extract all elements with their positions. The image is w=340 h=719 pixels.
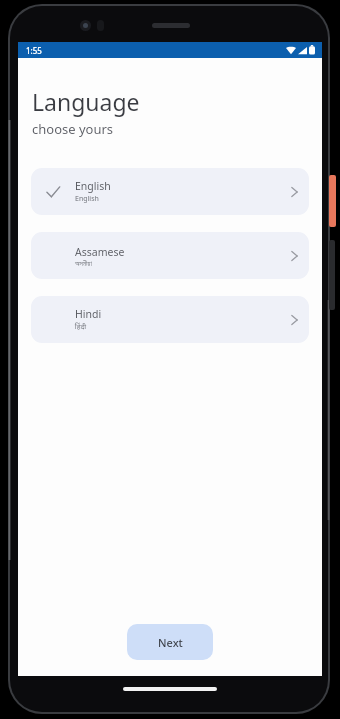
button[interactable]: Hindi (31, 296, 309, 343)
button[interactable]: Assamese (31, 232, 309, 279)
staticText: English (75, 179, 111, 193)
staticText: हिंदी (75, 322, 87, 332)
staticText: Hindi (75, 307, 102, 321)
staticText: Next (158, 635, 183, 650)
staticText: Assamese (75, 245, 125, 259)
staticText: choose yours (32, 120, 114, 138)
staticText: English (75, 194, 99, 204)
button[interactable]: Next (127, 624, 213, 660)
button[interactable]: English (31, 168, 309, 215)
staticText: অসমীয়া (75, 260, 92, 267)
staticText: Language (32, 86, 140, 117)
staticText: 1:55 (26, 45, 42, 56)
